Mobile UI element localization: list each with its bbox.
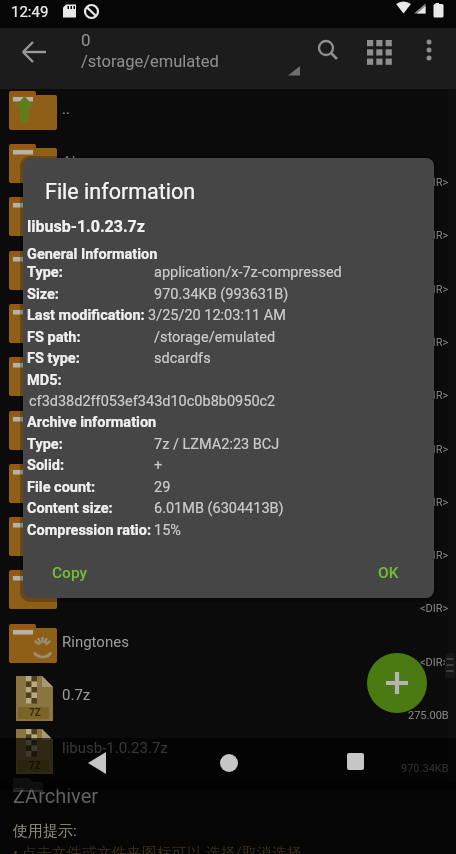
staticText: 275.00B <box>408 709 449 722</box>
staticText: Archive information <box>27 414 157 431</box>
button[interactable] <box>0 675 456 728</box>
staticText: Solid: <box>27 457 65 474</box>
staticText: FS path: <box>27 329 81 346</box>
staticText: 12:49 <box>11 3 49 21</box>
staticText: <DIR> <box>420 336 449 349</box>
button[interactable]: /storage/emulated <box>70 52 310 78</box>
staticText: General Information <box>27 246 158 263</box>
staticText: OK <box>378 564 399 582</box>
staticText: 970.34KB (993631B) <box>154 286 289 303</box>
staticText: <DIR> <box>420 176 449 189</box>
button[interactable] <box>68 740 128 788</box>
staticText: sdcardfs <box>154 350 211 367</box>
staticText: Last modification: <box>27 307 145 324</box>
staticText: 7Z <box>29 707 41 719</box>
staticText: Ringtones <box>62 633 129 651</box>
button[interactable] <box>0 355 456 408</box>
staticText: 7z / LZMA2:23 BCJ <box>154 436 280 453</box>
staticText: <DIR> <box>420 496 449 509</box>
button[interactable] <box>326 740 386 788</box>
button[interactable] <box>0 89 456 142</box>
staticText: /storage/emulated <box>154 329 276 346</box>
staticText: Music <box>62 420 103 438</box>
staticText: <DIR> <box>420 602 449 615</box>
staticText: Pictures <box>62 526 117 544</box>
staticText: Compression ratio: <box>27 522 152 539</box>
button[interactable] <box>0 409 456 462</box>
staticText: Type: <box>27 264 63 281</box>
staticText: 0 <box>81 30 91 50</box>
button[interactable] <box>12 30 58 74</box>
staticText: Download <box>62 313 129 331</box>
staticText: File count: <box>27 479 96 496</box>
staticText: Podcasts <box>62 579 125 597</box>
button[interactable]: Copy <box>35 554 105 592</box>
staticText: 0.7z <box>62 686 91 704</box>
staticText: DCIM <box>62 206 99 224</box>
staticText: application/x-7z-compressed <box>154 264 342 281</box>
button[interactable]: OK <box>358 554 418 592</box>
staticText: /storage/emulated <box>81 52 219 71</box>
button[interactable] <box>0 728 456 781</box>
staticText: + <box>154 457 163 474</box>
staticText: cf3d38d2ff053ef343d10c0b8b0950c2 <box>29 393 276 410</box>
staticText: <DIR> <box>420 443 449 456</box>
button[interactable] <box>0 249 456 302</box>
staticText: Alarms <box>62 153 110 171</box>
staticText: File information <box>45 179 196 204</box>
staticText: <DIR> <box>420 389 449 402</box>
staticText: libusb-1.0.23.7z <box>62 739 168 757</box>
staticText: .. <box>62 100 70 118</box>
button[interactable] <box>410 28 450 78</box>
staticText: 6.01MB (6304413B) <box>154 500 284 517</box>
button[interactable] <box>305 28 350 78</box>
staticText: Type: <box>27 436 63 453</box>
staticText: <DIR> <box>420 229 449 242</box>
staticText: 7Z <box>29 760 41 772</box>
button[interactable] <box>0 195 456 248</box>
button[interactable] <box>0 462 456 515</box>
staticText: FS type: <box>27 350 80 367</box>
staticText: Notifications <box>62 473 148 491</box>
staticText: MD5: <box>27 372 62 389</box>
button[interactable] <box>0 302 456 355</box>
button[interactable] <box>358 28 403 78</box>
staticText: • 点击文件或文件夹图标可以 选择/取消选择 <box>13 844 302 854</box>
staticText: <DIR> <box>420 656 449 669</box>
staticText: 29 <box>154 479 171 496</box>
staticText: 970.34KB <box>401 762 449 775</box>
staticText: 3/25/20 12:03:11 AM <box>148 307 286 324</box>
staticText: <DIR> <box>420 283 449 296</box>
staticText: 使用提示: <box>13 822 77 841</box>
button[interactable] <box>0 515 456 568</box>
staticText: ZArchiver <box>13 784 99 807</box>
staticText: <DIR> <box>420 549 449 562</box>
button[interactable] <box>367 653 427 713</box>
staticText: libusb-1.0.23.7z <box>27 217 145 236</box>
staticText: Size: <box>27 286 59 303</box>
staticText: Copy <box>52 564 88 582</box>
button[interactable] <box>198 740 258 788</box>
staticText: Content size: <box>27 500 113 517</box>
button[interactable] <box>0 142 456 195</box>
button[interactable] <box>0 568 456 621</box>
staticText: 15% <box>154 522 181 539</box>
button[interactable] <box>0 622 456 675</box>
